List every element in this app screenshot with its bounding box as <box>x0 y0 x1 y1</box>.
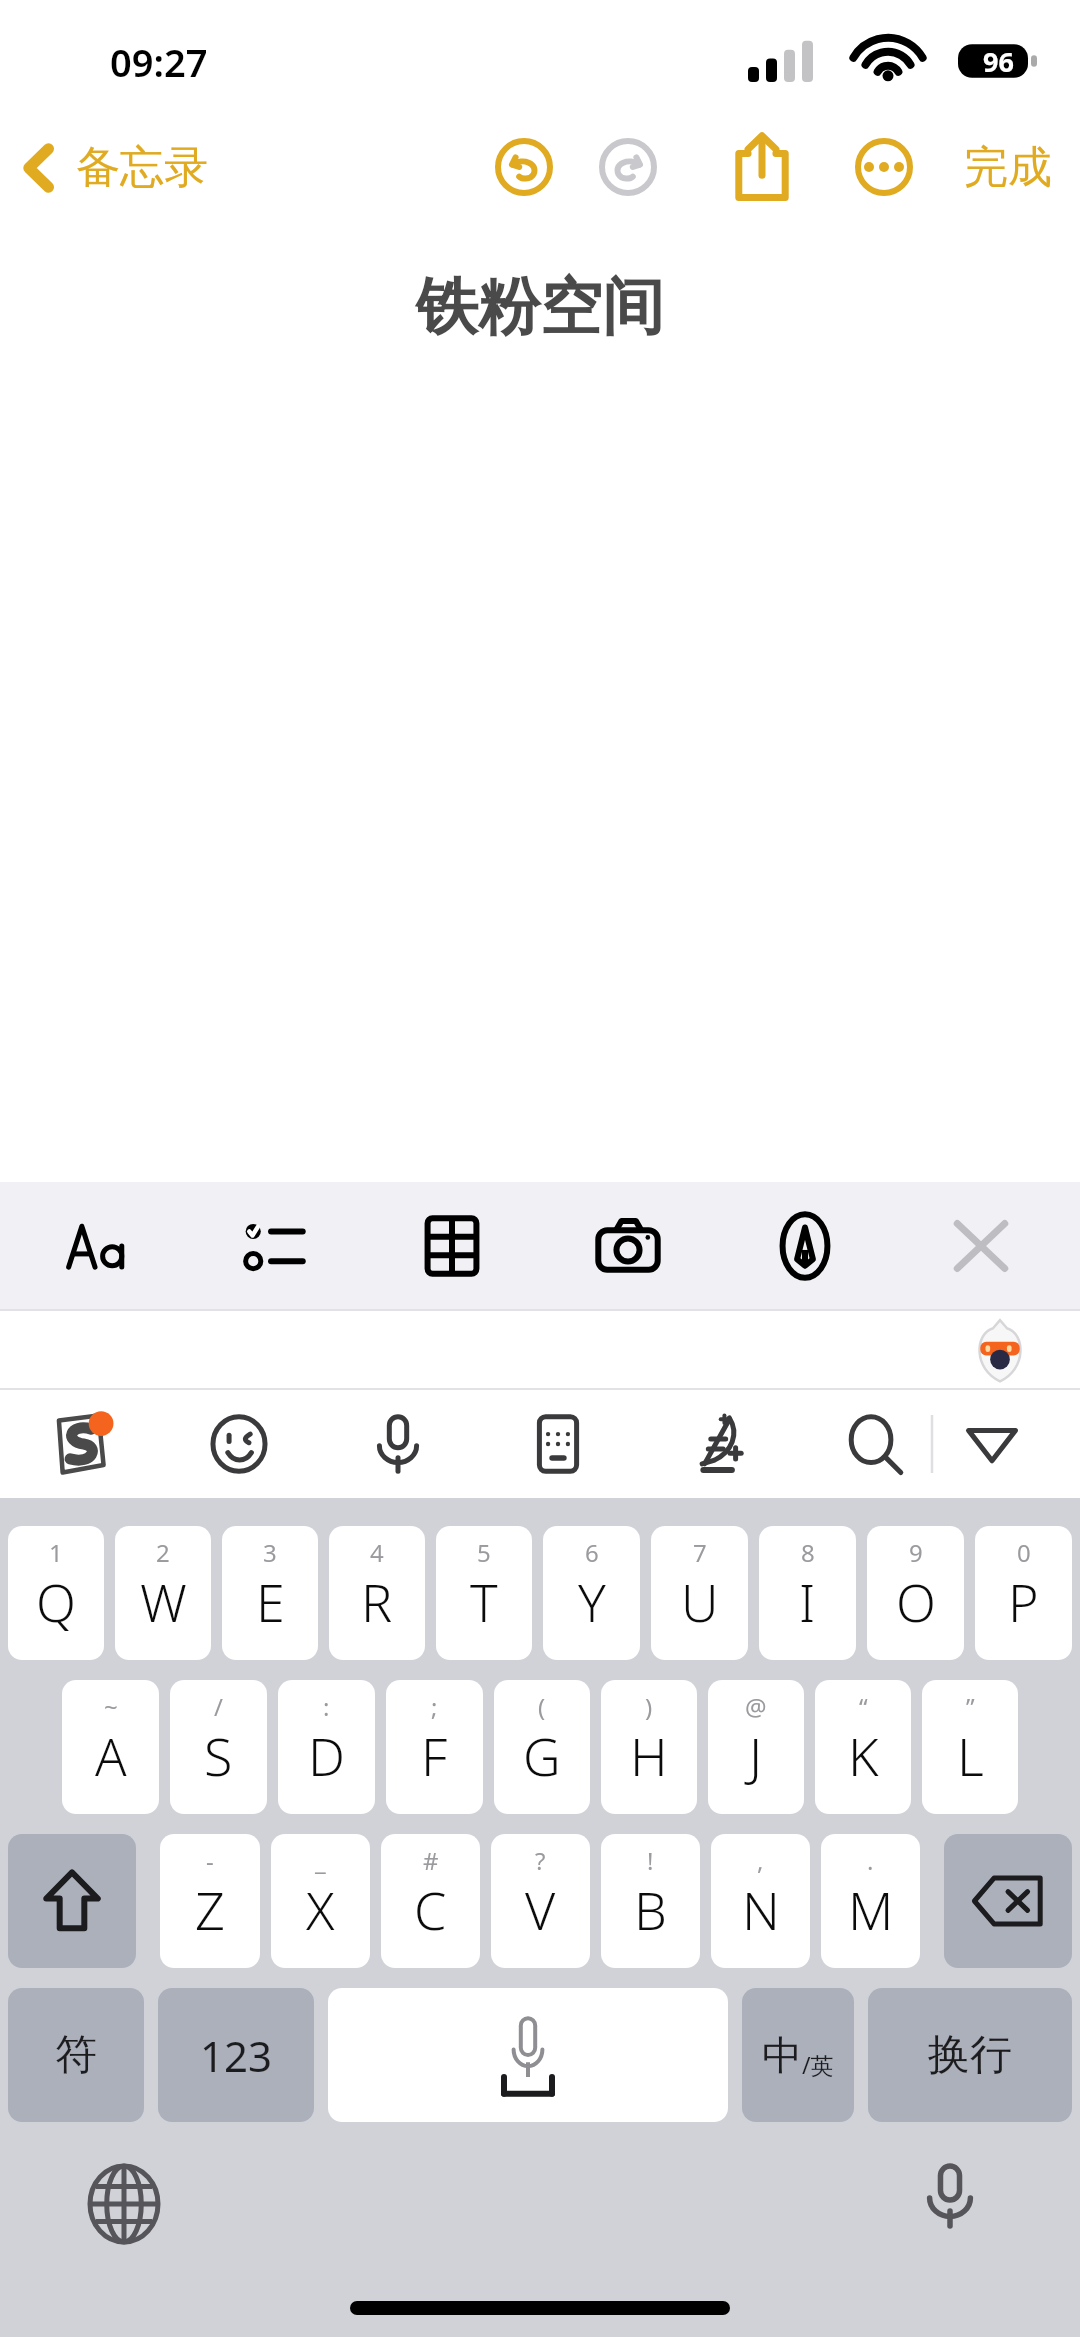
staticText: ; <box>431 1690 438 1723</box>
staticText: ” <box>966 1690 975 1723</box>
button[interactable]: : <box>278 1680 375 1814</box>
staticText: Q <box>36 1566 76 1637</box>
button[interactable]: Handwriting <box>663 1394 771 1494</box>
button[interactable]: 备忘录 <box>14 134 216 201</box>
staticText: Y <box>578 1566 606 1637</box>
staticText: R <box>361 1566 393 1637</box>
button[interactable]: Table <box>393 1187 511 1305</box>
staticText: J <box>749 1720 763 1791</box>
button[interactable]: Dictation <box>898 2152 1002 2256</box>
staticText: : <box>323 1690 330 1723</box>
button[interactable]: Markup <box>746 1187 864 1305</box>
button[interactable]: ! <box>601 1834 700 1968</box>
staticText: W <box>140 1566 187 1637</box>
staticText: / <box>214 1690 223 1723</box>
staticText: 0 <box>1017 1536 1031 1569</box>
staticText: _ <box>315 1844 326 1877</box>
button[interactable]: ) <box>601 1680 697 1814</box>
staticText: 5 <box>477 1536 491 1569</box>
button[interactable]: . <box>821 1834 920 1968</box>
button[interactable]: @ <box>708 1680 804 1814</box>
button[interactable]: Close keyboard <box>922 1187 1040 1305</box>
button[interactable]: ( <box>494 1680 590 1814</box>
button[interactable]: 换行 <box>868 1988 1072 2122</box>
staticText: S <box>204 1720 233 1791</box>
button[interactable]: Keyboard layout <box>504 1394 612 1494</box>
staticText: 7 <box>693 1536 707 1569</box>
button[interactable]: ~ <box>62 1680 159 1814</box>
staticText: D <box>308 1720 345 1791</box>
button[interactable]: , <box>711 1834 810 1968</box>
button[interactable]: # <box>381 1834 480 1968</box>
button[interactable]: Redo <box>576 119 680 215</box>
staticText: 8 <box>801 1536 815 1569</box>
button[interactable]: 中 <box>742 1988 854 2122</box>
staticText: P <box>1008 1566 1039 1637</box>
button[interactable]: Change keyboard <box>72 2152 176 2256</box>
button[interactable]: 123 <box>158 1988 314 2122</box>
button[interactable]: Checklist <box>216 1187 334 1305</box>
staticText: 9 <box>909 1536 923 1569</box>
staticText: 2 <box>156 1536 170 1569</box>
button[interactable]: 9 <box>867 1526 964 1660</box>
button[interactable]: Emoji <box>185 1394 293 1494</box>
button[interactable]: ” <box>922 1680 1018 1814</box>
button[interactable]: ? <box>491 1834 590 1968</box>
button[interactable]: Camera <box>569 1187 687 1305</box>
button[interactable]: Text format <box>40 1187 158 1305</box>
staticText: ! <box>647 1844 654 1877</box>
button[interactable]: 1 <box>8 1526 104 1660</box>
staticText: ~ <box>104 1690 118 1723</box>
staticText: A <box>95 1720 127 1791</box>
button[interactable]: ; <box>386 1680 483 1814</box>
staticText: L <box>957 1720 984 1791</box>
staticText: - <box>206 1844 214 1877</box>
staticText: ( <box>538 1690 546 1723</box>
staticText: V <box>525 1874 556 1945</box>
button[interactable]: Hide keyboard <box>946 1398 1038 1490</box>
staticText: U <box>681 1566 719 1637</box>
staticText: H <box>630 1720 668 1791</box>
button[interactable]: - <box>160 1834 260 1968</box>
button[interactable]: 3 <box>222 1526 318 1660</box>
button[interactable]: 符 <box>8 1988 144 2122</box>
button[interactable]: More <box>836 119 932 215</box>
button[interactable]: Undo <box>472 119 576 215</box>
button[interactable]: 0 <box>975 1526 1072 1660</box>
staticText: 铁粉空间 <box>416 268 664 346</box>
staticText: @ <box>745 1690 767 1723</box>
staticText: “ <box>859 1690 868 1723</box>
staticText: 4 <box>370 1536 384 1569</box>
button[interactable]: 4 <box>329 1526 425 1660</box>
button[interactable]: 完成 <box>954 130 1062 205</box>
staticText: 123 <box>200 2027 273 2084</box>
button[interactable]: 2 <box>115 1526 211 1660</box>
staticText: K <box>848 1720 879 1791</box>
staticText: . <box>867 1844 874 1877</box>
button[interactable]: 8 <box>759 1526 856 1660</box>
staticText: ) <box>645 1690 653 1723</box>
staticText: 换行 <box>928 2029 1012 2082</box>
button[interactable]: Sogou assistant <box>968 1314 1032 1386</box>
staticText: , <box>757 1844 764 1877</box>
staticText: 3 <box>263 1536 277 1569</box>
button[interactable]: 5 <box>436 1526 532 1660</box>
staticText: G <box>523 1720 561 1791</box>
button[interactable]: 6 <box>543 1526 640 1660</box>
staticText: 6 <box>585 1536 599 1569</box>
button[interactable]: Shift <box>8 1834 136 1968</box>
button[interactable]: “ <box>815 1680 911 1814</box>
button[interactable]: _ <box>271 1834 370 1968</box>
staticText: ? <box>535 1844 546 1877</box>
button[interactable]: Share <box>714 119 810 215</box>
button[interactable]: Sogou <box>26 1394 134 1494</box>
staticText: T <box>470 1566 498 1637</box>
staticText: 96 <box>983 43 1014 80</box>
button[interactable]: / <box>170 1680 267 1814</box>
button[interactable]: 7 <box>651 1526 748 1660</box>
button[interactable]: Voice input <box>344 1394 452 1494</box>
button[interactable]: Backspace <box>944 1834 1072 1968</box>
button[interactable]: Space <box>328 1988 728 2122</box>
button[interactable]: Search <box>822 1394 930 1494</box>
staticText: Z <box>195 1874 225 1945</box>
